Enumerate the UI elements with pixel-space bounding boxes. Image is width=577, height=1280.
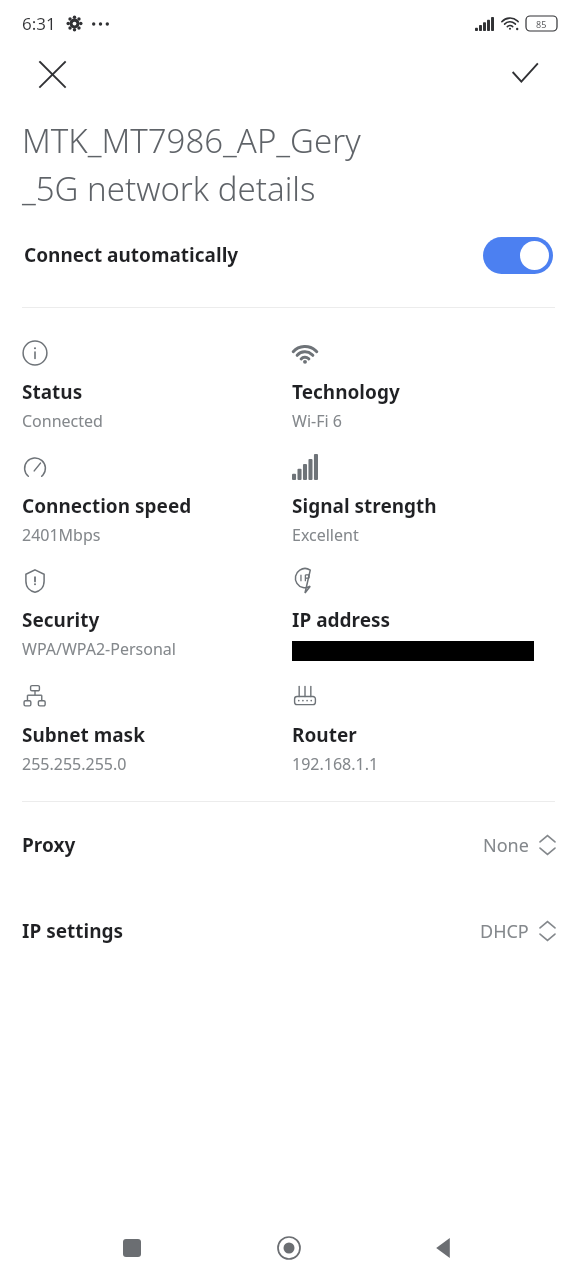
staticText: Connection speed	[22, 493, 192, 519]
staticText: Router	[292, 722, 357, 748]
staticText: WPA/WPA2-Personal	[22, 638, 176, 660]
button[interactable]: Save	[507, 56, 543, 92]
staticText: Technology	[292, 379, 400, 405]
button[interactable]: IP settings	[0, 888, 577, 974]
staticText: 85	[536, 18, 547, 30]
staticText: IP address	[292, 607, 391, 633]
button[interactable]: Connection speed	[22, 454, 284, 546]
button[interactable]: Security	[22, 568, 284, 660]
button[interactable]: Proxy	[0, 802, 577, 888]
button[interactable]: Signal strength	[292, 454, 555, 546]
staticText: 255.255.255.0	[22, 753, 127, 775]
button[interactable]: Recents	[108, 1224, 156, 1272]
staticText: Proxy	[22, 832, 76, 858]
button[interactable]: Subnet mask	[22, 683, 284, 775]
staticText: None	[483, 833, 529, 858]
button[interactable]: Close	[34, 56, 70, 92]
staticText: Security	[22, 607, 100, 633]
staticText: 2401Mbps	[22, 524, 101, 546]
staticText: Connected	[22, 410, 103, 432]
staticText: Status	[22, 379, 83, 405]
staticText: _5G network details	[22, 166, 316, 211]
staticText: Connect automatically	[24, 242, 239, 268]
staticText: Excellent	[292, 524, 359, 546]
staticText: MTK_MT7986_AP_Gery	[22, 118, 361, 163]
staticText: IP settings	[22, 918, 124, 944]
button[interactable]: Router	[292, 683, 555, 775]
staticText: 192.168.1.1	[292, 753, 379, 775]
button[interactable]: Back	[421, 1224, 469, 1272]
button[interactable]: IP address	[292, 568, 555, 661]
staticText: Subnet mask	[22, 722, 145, 748]
staticText: Signal strength	[292, 493, 437, 519]
button[interactable]: Connect automatically	[0, 231, 577, 279]
staticText: DHCP	[480, 919, 529, 944]
staticText: 6:31	[22, 12, 56, 35]
staticText: Wi-Fi 6	[292, 410, 342, 432]
button[interactable]: Home	[265, 1224, 313, 1272]
button[interactable]: Technology	[292, 340, 555, 432]
button[interactable]: Status	[22, 340, 284, 432]
